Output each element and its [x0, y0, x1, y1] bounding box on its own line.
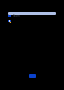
button[interactable]: Nam	[8, 14, 20, 17]
button[interactable]: Continue	[29, 74, 36, 78]
button[interactable]	[8, 20, 11, 23]
button[interactable]	[8, 12, 56, 15]
staticText: Nam	[13, 14, 20, 17]
